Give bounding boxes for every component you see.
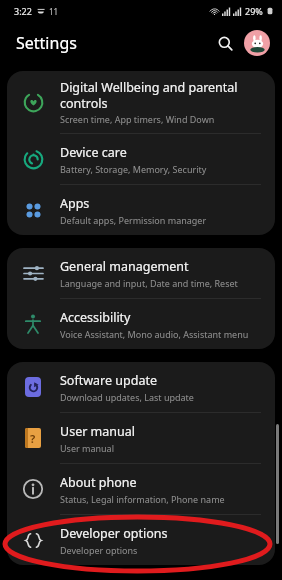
button[interactable]: ?: [7, 413, 275, 463]
staticText: Developer options: [60, 544, 138, 556]
staticText: Language and input, Date and time, Reset: [60, 277, 238, 289]
staticText: User manual: [60, 423, 135, 440]
staticText: Voice Assistant, Mono audio, Assistant m…: [60, 328, 249, 340]
staticText: About phone: [60, 474, 137, 491]
button[interactable]: About phone: [7, 464, 275, 514]
button[interactable]: Digital Wellbeing and parental controls: [7, 71, 275, 133]
button[interactable]: Device care: [7, 134, 275, 184]
staticText: Download updates, Last update: [60, 391, 194, 403]
staticText: Developer options: [60, 525, 168, 542]
staticText: Apps: [60, 195, 90, 212]
button[interactable]: Account: [244, 30, 270, 56]
staticText: Software update: [60, 372, 157, 389]
staticText: User manual: [60, 442, 114, 454]
button[interactable]: Software update: [7, 362, 275, 412]
button[interactable]: Developer options: [7, 515, 275, 565]
staticText: 11: [49, 6, 59, 17]
button[interactable]: Accessibility: [7, 299, 275, 349]
staticText: Screen time, App timers, Wind Down: [60, 113, 215, 125]
staticText: Accessibility: [60, 309, 131, 326]
button[interactable]: Search: [210, 28, 240, 58]
staticText: Default apps, Permission manager: [60, 214, 207, 226]
button[interactable]: General management: [7, 248, 275, 298]
staticText: ?: [30, 431, 36, 446]
staticText: Battery, Storage, Memory, Security: [60, 163, 207, 175]
staticText: Status, Legal information, Phone name: [60, 493, 225, 505]
staticText: Settings: [16, 32, 77, 54]
staticText: General management: [60, 258, 189, 275]
button[interactable]: Apps: [7, 185, 275, 235]
staticText: 3:22: [14, 5, 32, 17]
staticText: Digital Wellbeing and parental controls: [60, 79, 238, 111]
staticText: Device care: [60, 144, 127, 161]
staticText: 29%: [245, 5, 263, 17]
